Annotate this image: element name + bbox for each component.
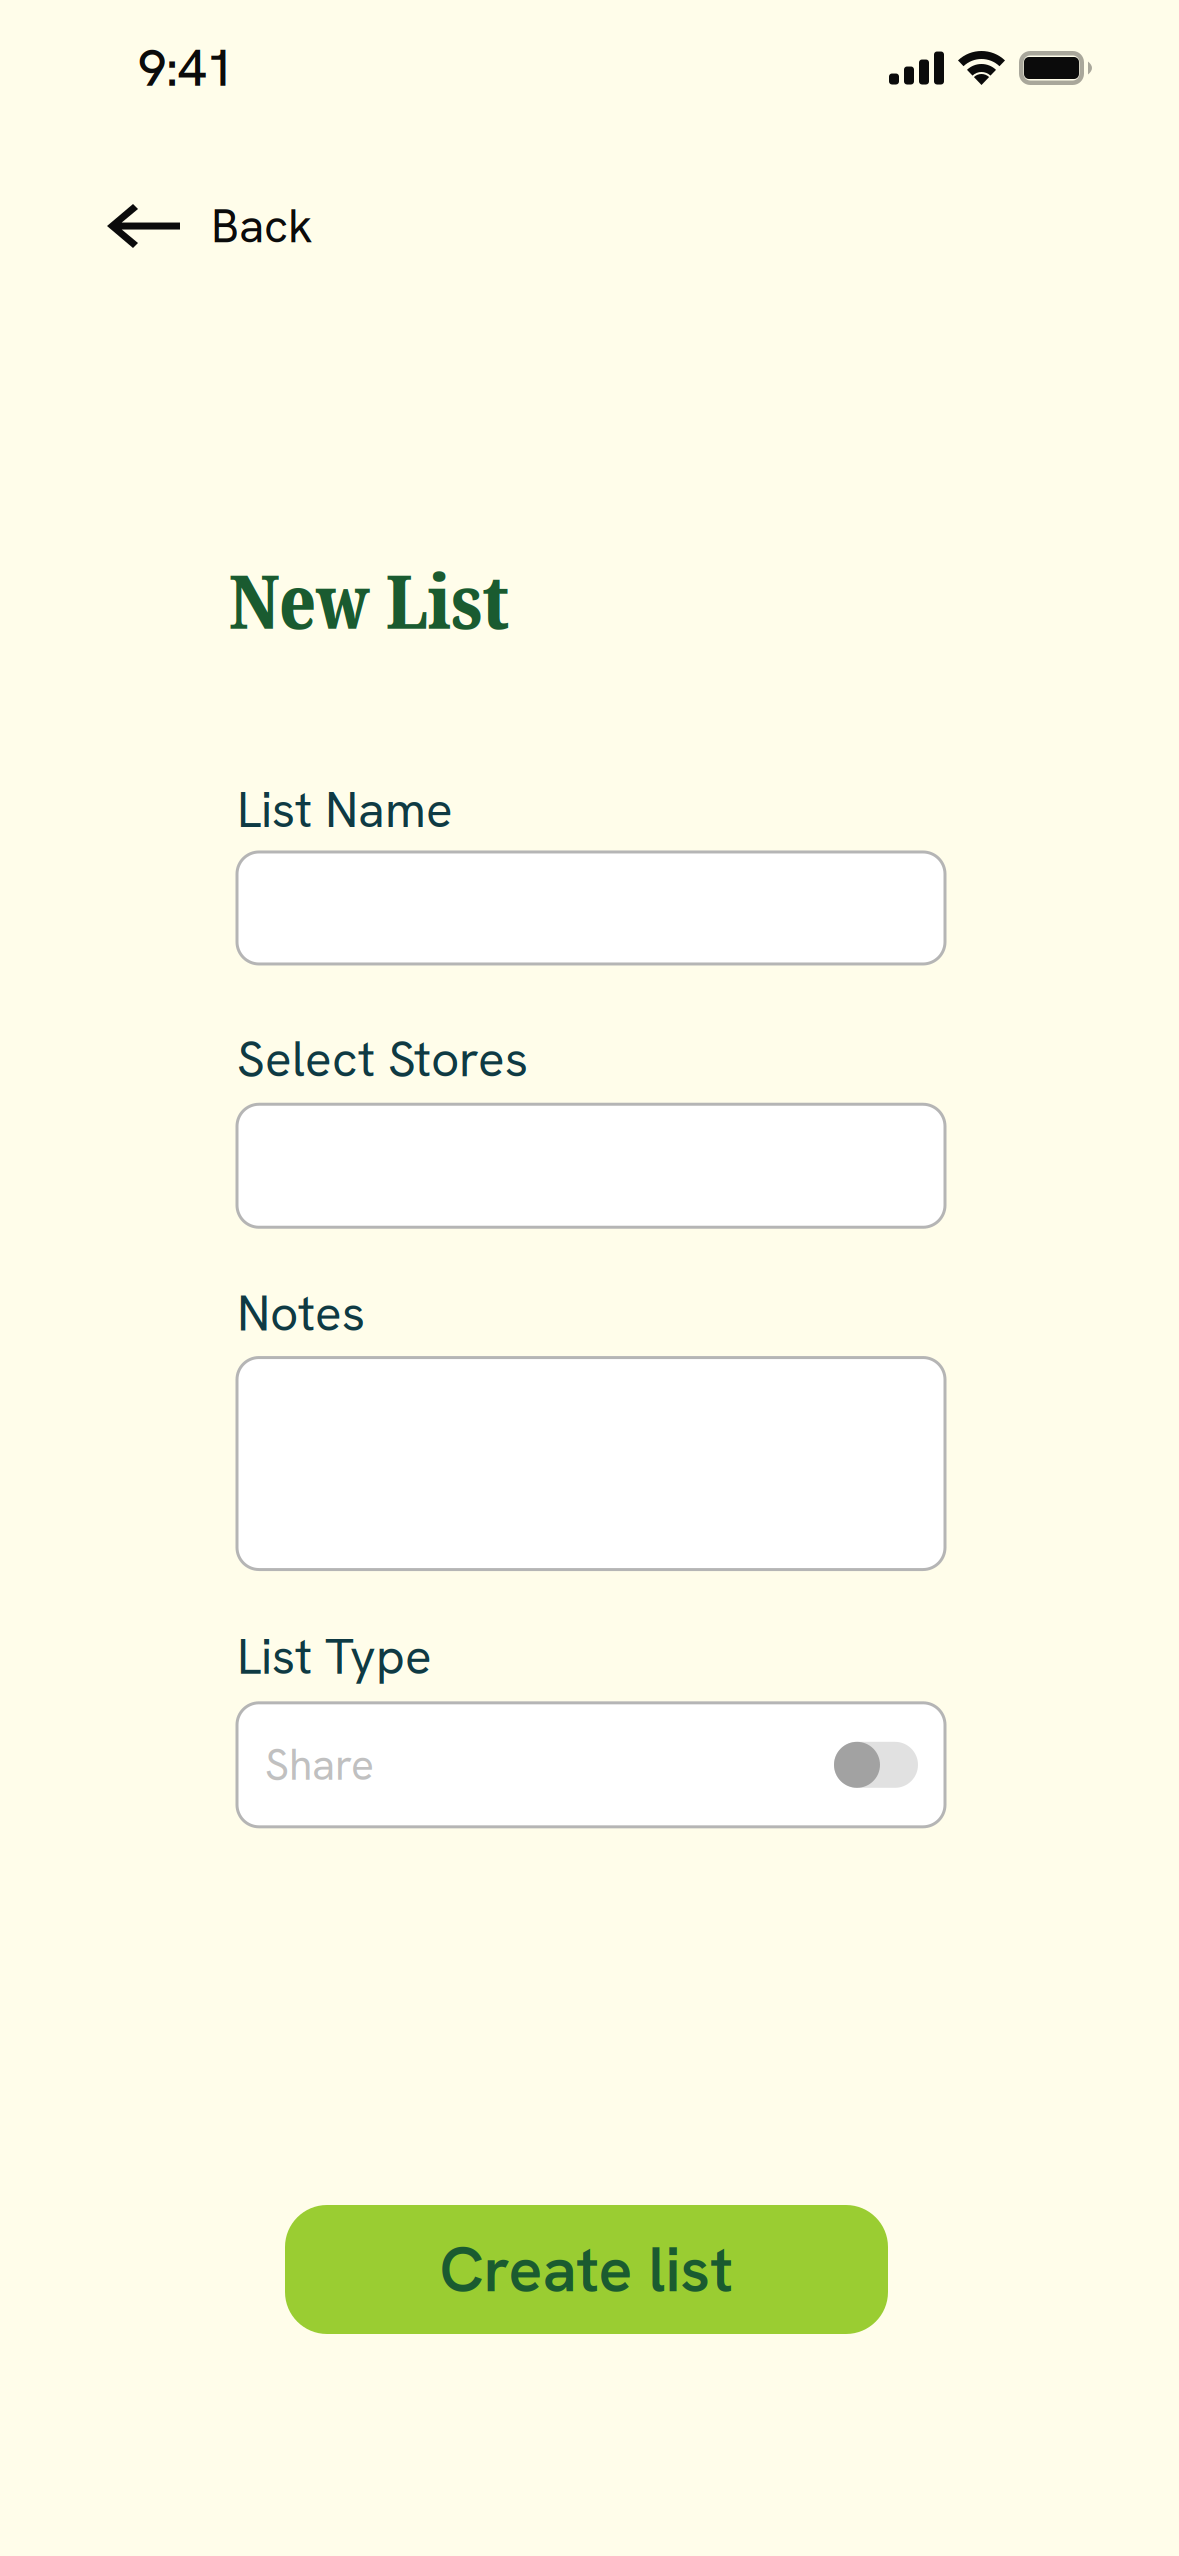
- staticText: 9:41: [138, 35, 234, 101]
- button[interactable]: Create list: [285, 2205, 888, 2334]
- button[interactable]: Share: [237, 1703, 945, 1827]
- staticText: Notes: [237, 1281, 365, 1346]
- staticText: New List: [229, 549, 509, 651]
- staticText: List Type: [237, 1624, 432, 1689]
- staticText: Back: [211, 196, 313, 256]
- staticText: Share: [265, 1737, 374, 1793]
- button[interactable]: Back: [0, 203, 1179, 249]
- staticText: List Name: [237, 778, 453, 842]
- staticText: Select Stores: [237, 1027, 528, 1091]
- staticText: Create list: [439, 2229, 733, 2310]
